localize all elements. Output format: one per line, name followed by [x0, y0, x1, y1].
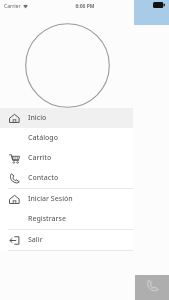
button[interactable]: Call — [135, 275, 169, 300]
staticText: Carrito — [28, 153, 52, 163]
button[interactable]: Iniciar Sesión — [0, 189, 133, 209]
button[interactable]: Registrarse — [0, 209, 133, 229]
staticText: Iniciar Sesión — [28, 194, 73, 204]
button[interactable]: Carrito — [0, 148, 133, 168]
staticText: Catálogo — [28, 133, 58, 143]
button[interactable]: Catálogo — [0, 128, 133, 148]
staticText: Contacto — [28, 173, 59, 183]
button[interactable]: Salir — [0, 230, 133, 250]
button[interactable]: Contacto — [0, 168, 133, 188]
staticText: Carrier — [4, 3, 21, 10]
other: Battery — [153, 2, 165, 8]
staticText: 6:06 PM — [75, 3, 95, 10]
button[interactable]: Inicio — [0, 108, 133, 128]
staticText: Registrarse — [28, 214, 66, 224]
other: Logo — [25, 23, 110, 108]
staticText: Salir — [28, 235, 43, 245]
staticText: Inicio — [28, 113, 47, 123]
